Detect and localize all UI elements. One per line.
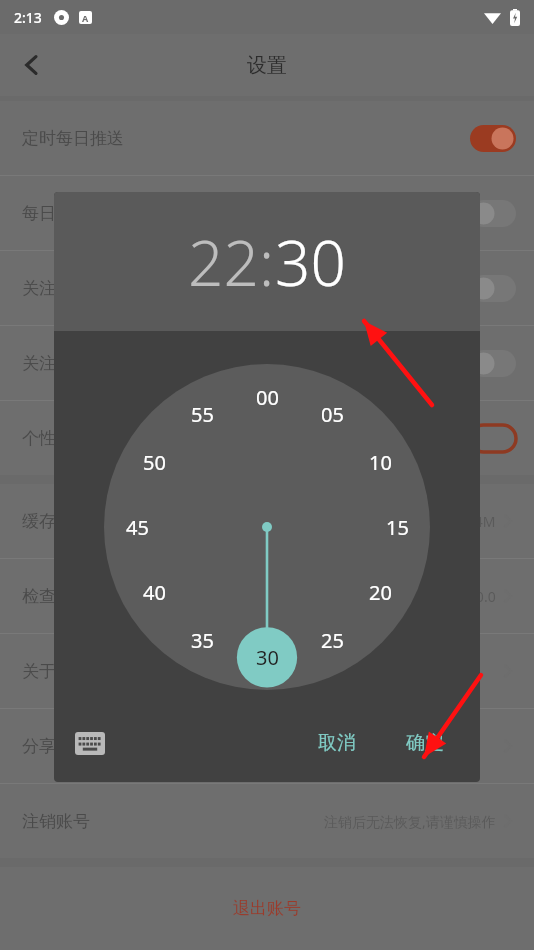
button[interactable]: 30 [244,634,290,680]
button[interactable]: 05 [309,391,355,437]
staticText: 20 [369,579,392,606]
staticText: 12.4M [455,512,496,531]
button[interactable]: Back [8,41,56,89]
staticText: 15 [386,514,409,541]
button[interactable]: 35 [179,617,225,663]
staticText: 00 [256,384,279,411]
button[interactable]: Switch to keyboard input [68,721,112,765]
staticText: 10 [369,449,392,476]
button[interactable]: 22 [188,220,259,304]
button[interactable]: 关注的人开播提醒 [0,326,534,400]
staticText: 关于我们 [22,661,90,682]
button[interactable]: 15 [374,504,420,550]
staticText: 55 [191,401,214,428]
button[interactable]: 10 [357,439,403,485]
button[interactable]: 检查更新 [0,559,534,633]
staticText: 每日推送时间 [22,203,124,224]
button[interactable]: 45 [114,504,160,550]
staticText: 设置 [247,53,287,78]
button[interactable]: 个性化推荐 [0,401,534,475]
button[interactable]: 25 [309,617,355,663]
staticText: 2:13 [14,8,42,27]
button[interactable]: 每日推送时间 [0,176,534,250]
staticText: 45 [126,514,149,541]
button[interactable]: 定时每日推送 [0,101,534,175]
button[interactable]: 确定 [390,721,460,765]
button[interactable]: 30 [275,220,346,304]
staticText: A [82,12,89,24]
staticText: 缓存清理 [22,511,90,532]
staticText: v1.0.0 [457,587,496,606]
staticText: 05 [321,401,344,428]
staticText: 个性化推荐 [22,428,107,449]
staticText: 35 [191,627,214,654]
staticText: : [259,220,275,304]
staticText: 关注的人发布动态 [22,278,158,299]
button[interactable]: 缓存清理 [0,484,534,558]
button[interactable]: 50 [131,439,177,485]
button[interactable]: 分享应用 [0,709,534,783]
button[interactable]: 退出账号 [223,888,311,929]
staticText: 定时每日推送 [22,128,124,149]
staticText: 50 [143,449,166,476]
staticText: 注销账号 [22,811,90,832]
button[interactable]: 注销账号 [0,784,534,858]
staticText: 注销后无法恢复,请谨慎操作 [324,812,496,831]
staticText: 30 [256,644,279,671]
staticText: 分享应用 [22,736,90,757]
button[interactable]: 20 [357,569,403,615]
staticText: 关注的人开播提醒 [22,353,158,374]
button[interactable]: 00 [244,374,290,420]
staticText: 25 [321,627,344,654]
button[interactable]: 55 [179,391,225,437]
button[interactable]: 关注的人发布动态 [0,251,534,325]
staticText: 40 [143,579,166,606]
staticText: 检查更新 [22,586,90,607]
button[interactable]: 取消 [302,721,372,765]
button[interactable]: 40 [131,569,177,615]
button[interactable]: 关于我们 [0,634,534,708]
